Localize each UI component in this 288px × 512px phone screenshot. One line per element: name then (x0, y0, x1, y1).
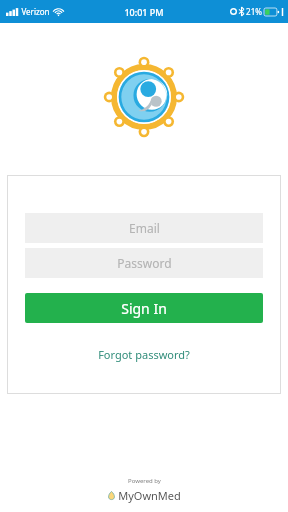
button[interactable]: Sign In (25, 293, 263, 323)
staticText: 10:01 PM (124, 6, 164, 18)
staticText: Email (129, 220, 160, 236)
button[interactable]: Forgot password? (25, 347, 263, 362)
staticText: MyOwnMed (118, 488, 181, 503)
staticText: Password (117, 255, 172, 271)
staticText: Powered by (128, 477, 161, 485)
button[interactable]: Email (25, 213, 263, 243)
staticText: 21% (246, 6, 262, 17)
staticText: Sign In (121, 299, 167, 318)
button[interactable]: Password (25, 248, 263, 278)
staticText: Forgot password? (98, 347, 190, 362)
staticText: Verizon (21, 6, 50, 17)
